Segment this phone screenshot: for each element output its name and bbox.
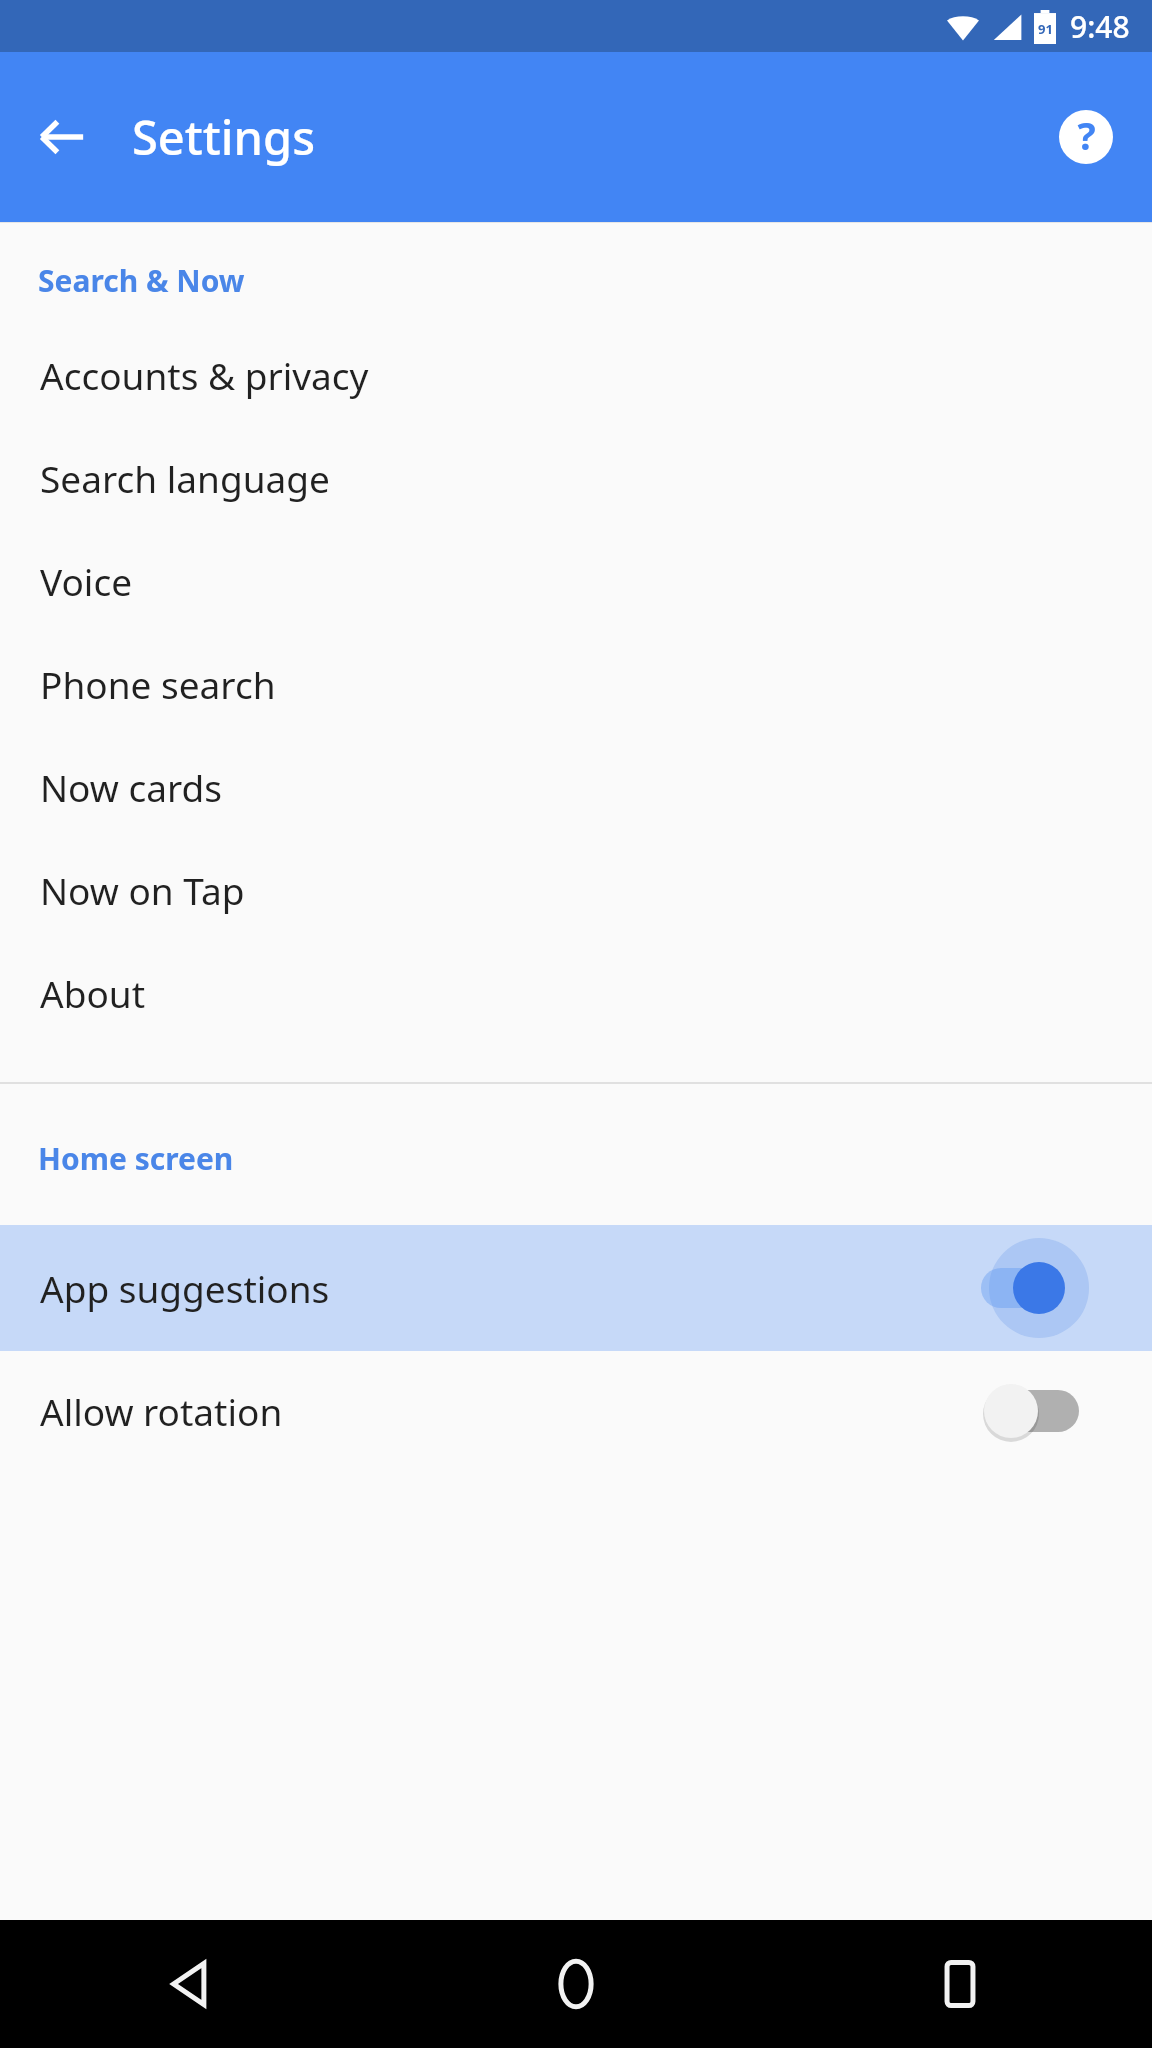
staticText: Settings	[132, 105, 315, 169]
button[interactable]: About	[0, 941, 1152, 1044]
staticText: Phone search	[40, 659, 276, 709]
button[interactable]: Home	[384, 1920, 768, 2048]
button[interactable]: Help	[1050, 101, 1122, 173]
button[interactable]: Allow rotation	[0, 1351, 1152, 1471]
button[interactable]: Phone search	[0, 632, 1152, 735]
button[interactable]: Search language	[0, 426, 1152, 529]
staticText: Accounts & privacy	[40, 350, 369, 400]
staticText: 9:48	[1070, 6, 1130, 47]
button[interactable]: Voice	[0, 529, 1152, 632]
staticText: App suggestions	[40, 1263, 984, 1313]
staticText: About	[40, 968, 146, 1018]
button[interactable]: Back	[26, 101, 98, 173]
button[interactable]: Recent apps	[768, 1920, 1152, 2048]
staticText: Search & Now	[38, 260, 245, 301]
staticText: Search language	[40, 453, 330, 503]
staticText: Home screen	[38, 1138, 234, 1179]
button[interactable]: Now on Tap	[0, 838, 1152, 941]
staticText: ?	[1077, 110, 1096, 161]
staticText: Voice	[40, 556, 133, 606]
button[interactable]: Back	[0, 1920, 384, 2048]
staticText: Now cards	[40, 762, 223, 812]
staticText: Now on Tap	[40, 865, 245, 915]
staticText: 91	[1038, 20, 1053, 38]
staticText: Allow rotation	[40, 1386, 984, 1436]
button[interactable]: Accounts & privacy	[0, 323, 1152, 426]
button[interactable]: Now cards	[0, 735, 1152, 838]
button[interactable]: App suggestions	[0, 1225, 1152, 1351]
